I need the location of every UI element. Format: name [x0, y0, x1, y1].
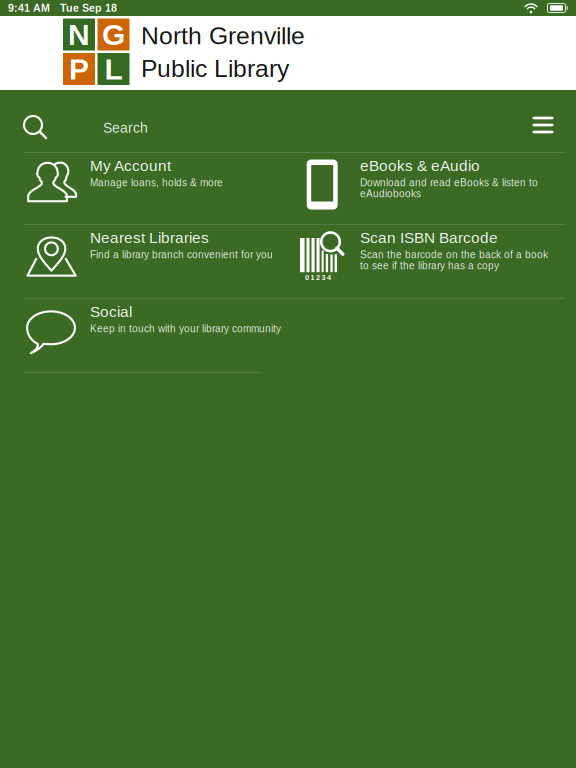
staticText: My Account: [90, 157, 171, 174]
button[interactable]: Search: [14, 106, 58, 150]
staticText: L: [104, 52, 122, 86]
staticText: P: [69, 52, 89, 86]
staticText: Search: [103, 120, 148, 136]
button[interactable]: Search: [103, 106, 483, 150]
staticText: 01234: [305, 273, 331, 282]
staticText: Scan ISBN Barcode: [360, 229, 498, 246]
staticText: Social: [90, 303, 132, 320]
staticText: Nearest Libraries: [90, 229, 209, 246]
button[interactable]: 01234: [288, 225, 576, 299]
staticText: Download and read eBooks & listen to eAu…: [360, 177, 538, 199]
staticText: N: [68, 18, 90, 51]
staticText: G: [102, 18, 125, 51]
button[interactable]: eBooks & eAudio: [288, 153, 576, 225]
staticText: Manage loans, holds & more: [90, 177, 223, 188]
button[interactable]: Nearest Libraries: [0, 225, 288, 299]
staticText: Tue Sep 18: [60, 2, 117, 14]
staticText: 9:41 AM: [8, 2, 50, 14]
staticText: North Grenville: [141, 22, 305, 50]
staticText: Keep in touch with your library communit…: [90, 323, 281, 334]
button[interactable]: Menu: [521, 103, 565, 147]
button[interactable]: Social: [0, 299, 288, 373]
staticText: eBooks & eAudio: [360, 157, 480, 174]
button[interactable]: My Account: [0, 153, 288, 225]
staticText: Public Library: [141, 55, 289, 82]
staticText: Scan the barcode on the back of a book t…: [360, 249, 548, 271]
staticText: Find a library branch convenient for you: [90, 249, 273, 260]
